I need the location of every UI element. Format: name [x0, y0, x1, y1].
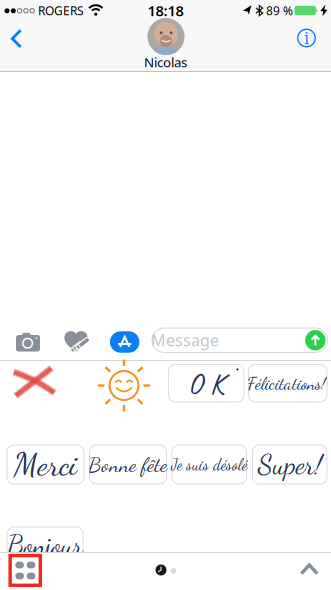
staticText: Merci [13, 445, 77, 484]
button[interactable]: Je suis désolé [172, 445, 246, 484]
button[interactable]: Message [152, 328, 327, 352]
staticText: Bonne fête [88, 452, 167, 477]
button[interactable]: O K [168, 364, 244, 402]
staticText: Message [151, 329, 219, 351]
staticText: Je suis désolé [171, 455, 247, 474]
button[interactable]: Red X sticker [11, 365, 57, 397]
button[interactable]: Félicitations! [248, 364, 327, 402]
staticText: Bonjour [7, 529, 82, 561]
staticText: Super! [258, 448, 322, 481]
button[interactable]: Details [296, 28, 316, 48]
button[interactable]: App grid [8, 554, 42, 587]
button[interactable]: Send [305, 330, 326, 351]
staticText: Félicitations! [247, 373, 326, 394]
staticText: 89 % [266, 3, 293, 18]
button[interactable]: Super! [252, 445, 327, 484]
button[interactable]: Sun sticker [98, 359, 150, 411]
button[interactable]: Collapse [300, 563, 319, 575]
staticText: ROGERS [38, 3, 84, 18]
button[interactable]: iMessage apps [110, 331, 140, 353]
staticText: i [304, 29, 309, 48]
button[interactable]: Camera [16, 332, 40, 352]
button[interactable]: Bonjour [7, 527, 83, 566]
button[interactable]: Digital Touch [64, 331, 88, 352]
staticText: 18:18 [147, 1, 183, 20]
button[interactable]: Merci [7, 445, 84, 484]
staticText: Nicolas [144, 53, 187, 71]
button[interactable]: Back [11, 29, 22, 48]
button[interactable]: Bonne fête [89, 445, 166, 484]
staticText: O K [188, 365, 225, 402]
